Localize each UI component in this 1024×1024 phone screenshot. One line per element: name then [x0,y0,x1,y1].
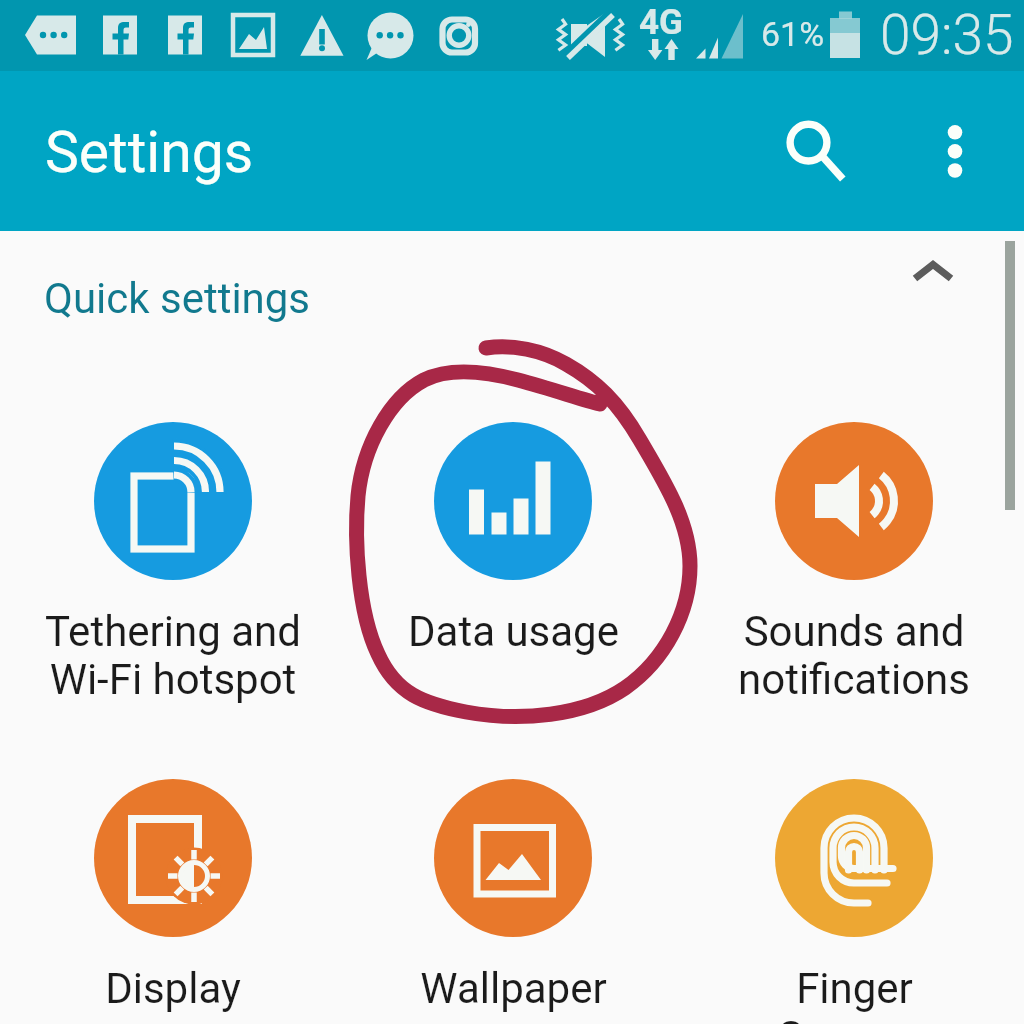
button[interactable]: Tethering and Wi-Fi hotspot [13,422,333,704]
staticText: Finger Scanner [778,964,931,1024]
button[interactable]: Finger Scanner [694,779,1014,1024]
staticText: Sounds and notifications [738,607,970,704]
button[interactable]: Display [13,779,333,1013]
staticText: Display [105,964,241,1013]
staticText: 09:35 [880,3,1014,67]
staticText: Wallpaper [420,964,607,1013]
staticText: 4G [639,2,683,43]
staticText: Quick settings [44,274,311,323]
staticText: Data usage [408,607,619,656]
button[interactable]: Search [771,104,867,200]
staticText: 61% [761,14,825,54]
staticText: Tethering and Wi-Fi hotspot [45,607,301,704]
staticText: Settings [45,119,254,186]
button[interactable]: Data usage [353,422,673,656]
button[interactable]: More options [907,105,1003,201]
button[interactable]: Collapse quick settings [883,221,983,321]
button[interactable]: Wallpaper [353,779,673,1013]
button[interactable]: Sounds and notifications [694,422,1014,704]
